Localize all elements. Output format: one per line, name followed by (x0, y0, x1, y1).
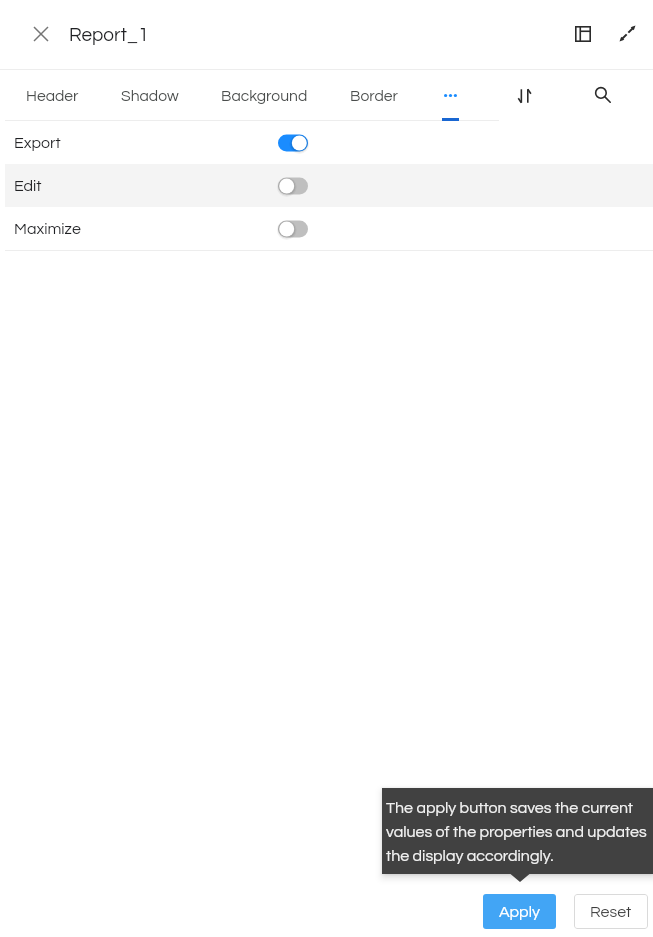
button[interactable]: Apply (483, 894, 556, 929)
button[interactable]: Reset (574, 894, 648, 929)
staticText: Report_1 (69, 25, 149, 45)
staticText: Header (26, 88, 79, 104)
button[interactable]: More options (419, 70, 481, 121)
staticText: Export (14, 135, 61, 151)
staticText: The apply button saves the current value… (386, 800, 652, 864)
button[interactable]: Search (579, 71, 627, 119)
button[interactable]: Background (200, 70, 329, 121)
staticText: Shadow (121, 88, 179, 104)
button[interactable]: Sort (501, 72, 549, 120)
staticText: Apply (499, 904, 540, 920)
staticText: Background (221, 88, 308, 104)
button[interactable]: Maximize (5, 207, 653, 250)
button[interactable]: Border (329, 70, 419, 121)
button[interactable]: Edit (5, 164, 653, 207)
staticText: Reset (590, 904, 632, 920)
staticText: Border (350, 88, 398, 104)
button[interactable]: Layout (559, 10, 607, 58)
staticText: Maximize (14, 221, 81, 237)
button[interactable]: Expand (603, 9, 651, 57)
button[interactable]: Close (17, 10, 65, 58)
button[interactable]: Shadow (100, 70, 200, 121)
button[interactable]: Header (5, 70, 100, 121)
button[interactable]: Export (5, 121, 653, 164)
staticText: Edit (14, 178, 42, 194)
